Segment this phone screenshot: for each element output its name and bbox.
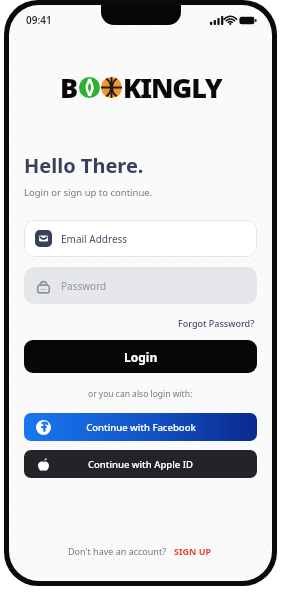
staticText: Email Address <box>61 232 128 246</box>
button[interactable]: SIGN UP <box>172 543 214 559</box>
button[interactable]: Login <box>24 340 257 373</box>
button[interactable]: Password <box>24 267 257 304</box>
staticText: Password <box>61 279 107 293</box>
staticText: Login <box>124 349 158 365</box>
staticText: Continue with Apple ID <box>88 458 193 471</box>
button[interactable]: Forgot Password? <box>176 315 257 331</box>
button[interactable]: Continue with Facebook <box>24 413 257 441</box>
staticText: KINGLY <box>123 69 222 106</box>
staticText: B <box>60 69 78 106</box>
button[interactable]: Continue with Apple ID <box>24 450 257 478</box>
staticText: Hello There. <box>24 152 144 179</box>
staticText: SIGN UP <box>174 545 212 557</box>
staticText: or you can also login with: <box>88 388 193 400</box>
button[interactable]: Email Address <box>24 220 257 257</box>
staticText: Login or sign up to continue. <box>24 186 153 199</box>
staticText: Continue with Facebook <box>86 421 196 434</box>
staticText: Forgot Password? <box>178 317 255 329</box>
staticText: 09:41 <box>26 13 52 27</box>
staticText: Don't have an account? <box>68 545 167 557</box>
